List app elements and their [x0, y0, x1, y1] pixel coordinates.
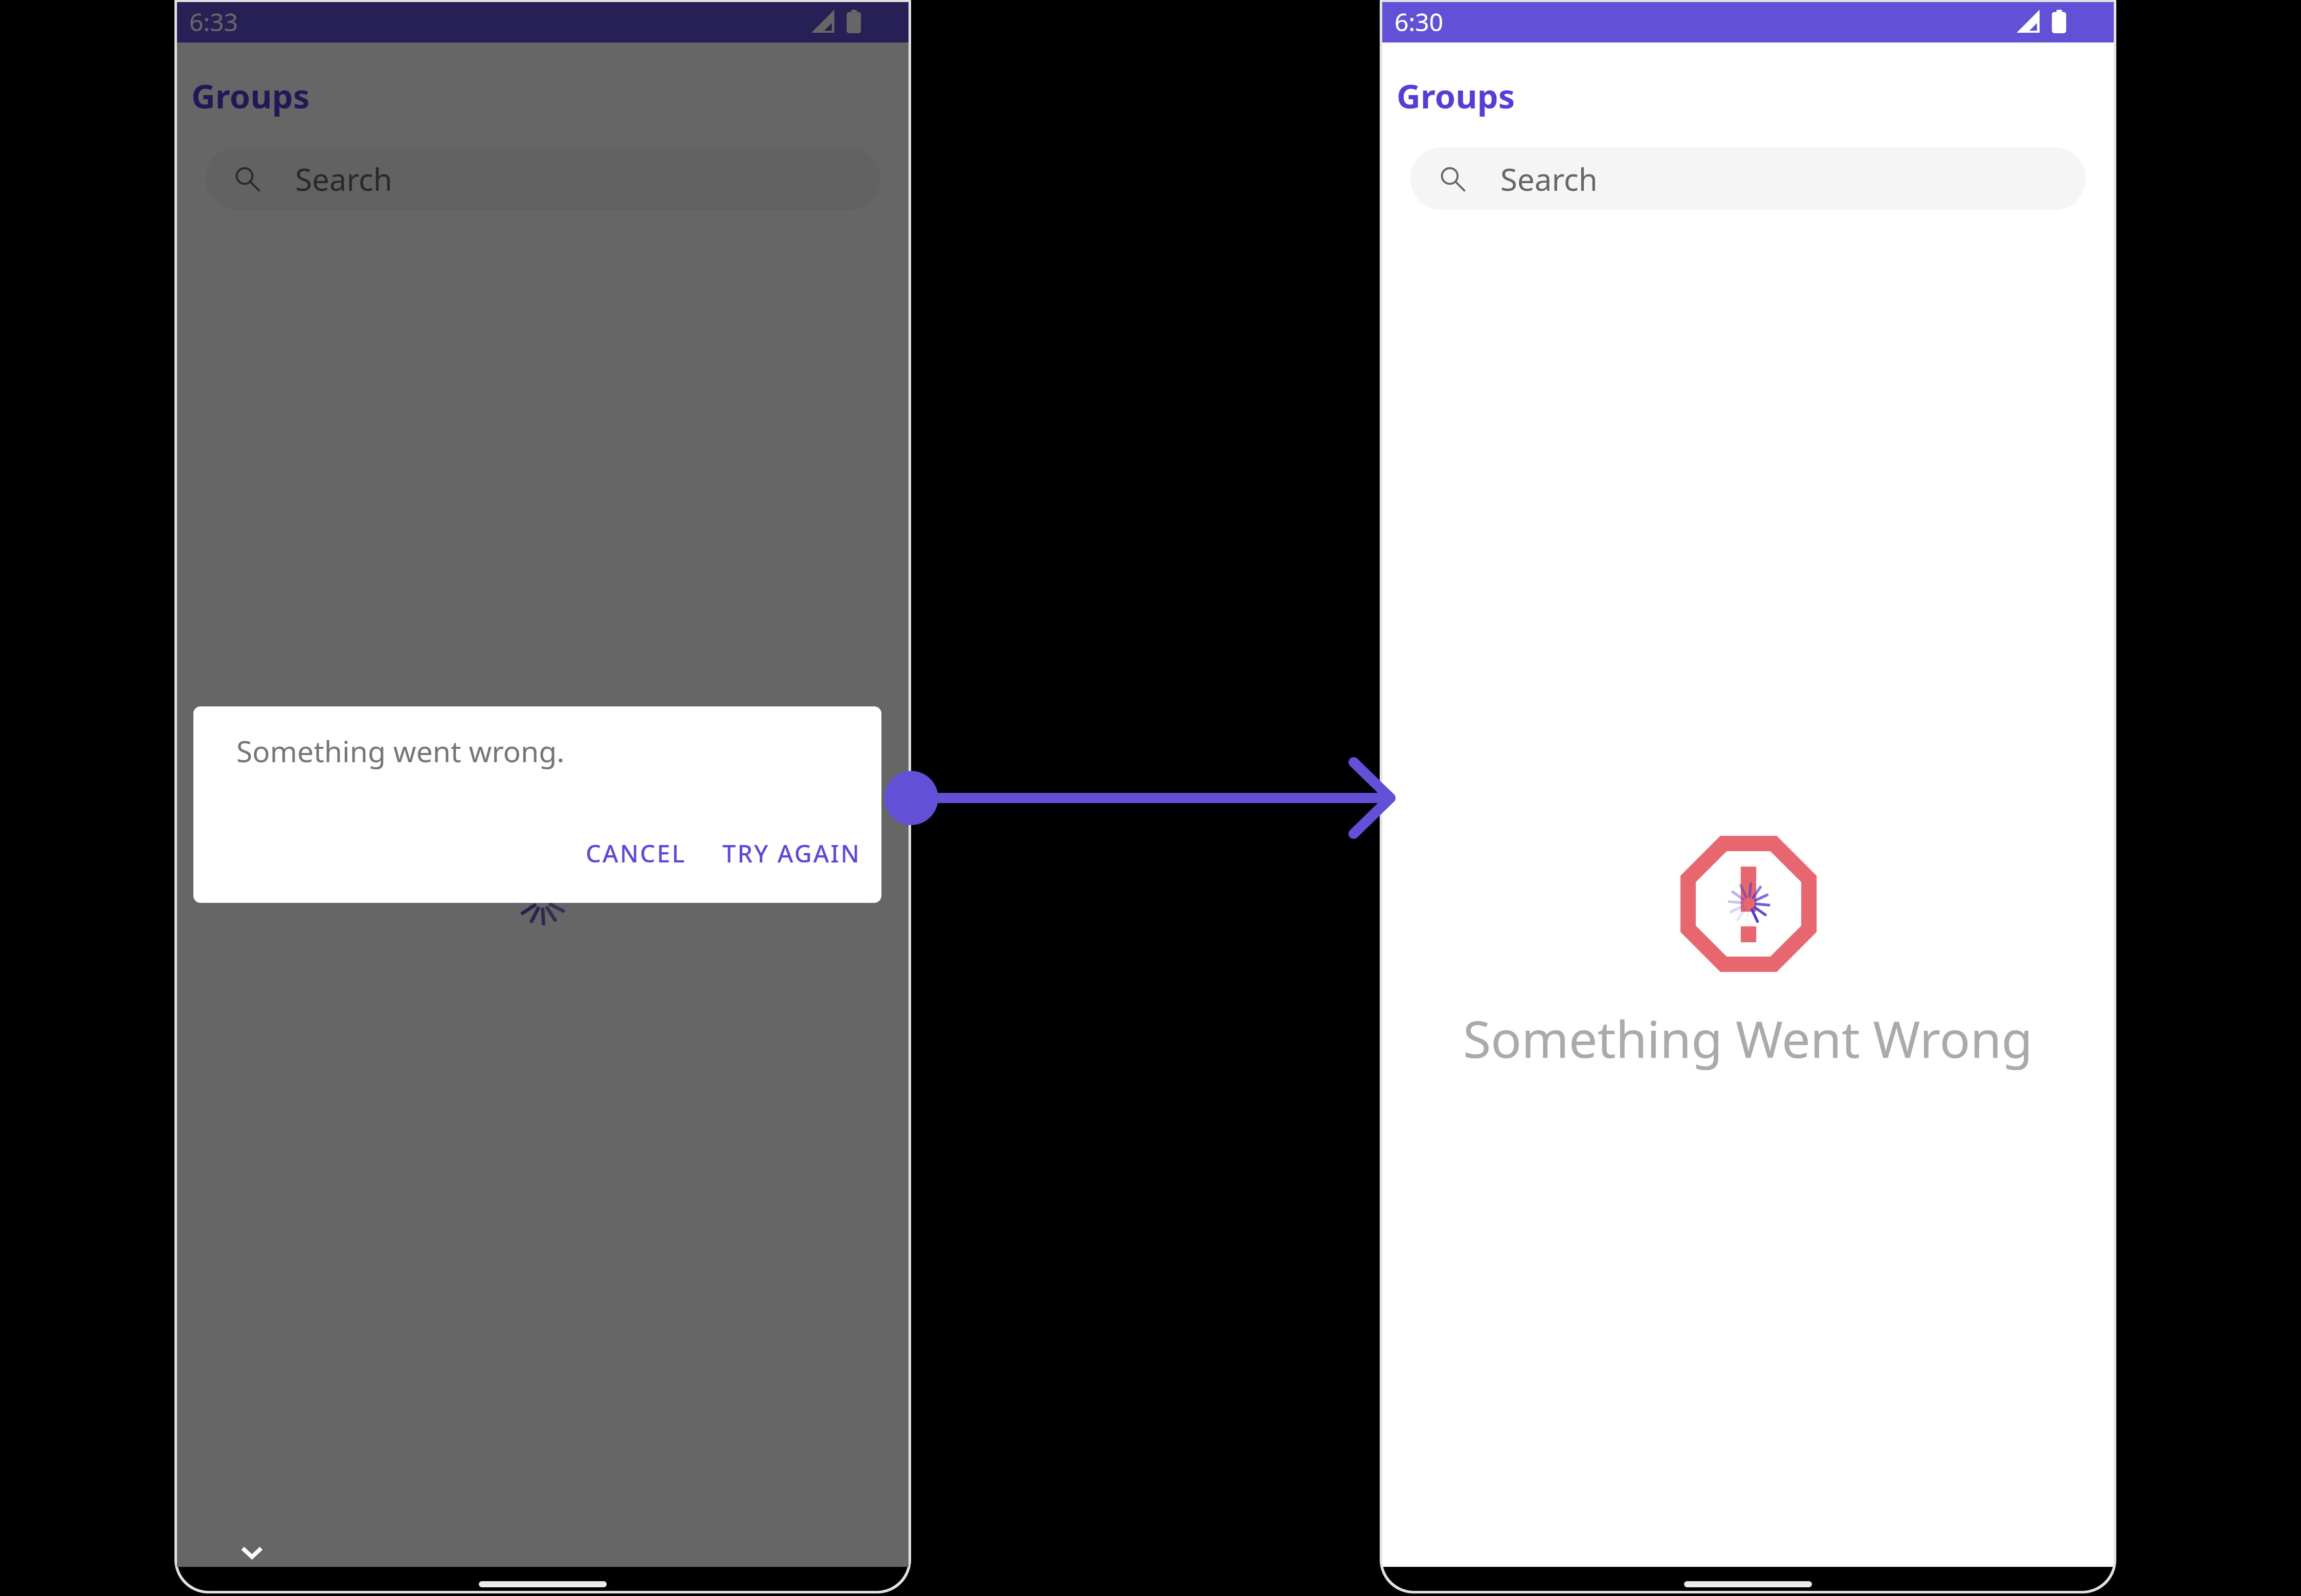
staticText: Groups	[1397, 73, 1515, 119]
button[interactable]: Dismiss dialog	[177, 0, 909, 1567]
staticText: Search	[295, 158, 392, 200]
staticText: Groups	[191, 73, 310, 119]
staticText: Something Went Wrong	[1463, 1004, 2033, 1073]
staticText: 6:30	[1395, 5, 1444, 38]
button[interactable]: Home	[479, 1581, 607, 1587]
staticText: Something went wrong.	[236, 731, 565, 771]
button[interactable]: Search	[205, 147, 880, 210]
button[interactable]: TRY AGAIN	[713, 831, 870, 876]
button[interactable]: Hide keyboard	[224, 1525, 279, 1581]
staticText: CANCEL	[586, 837, 687, 870]
staticText: 6:33	[189, 5, 238, 38]
button[interactable]: Home	[1684, 1581, 1812, 1587]
staticText: Search	[1500, 158, 1598, 200]
staticText: TRY AGAIN	[722, 837, 861, 870]
button[interactable]: CANCEL	[577, 831, 696, 876]
button[interactable]: Search	[1410, 147, 2086, 210]
